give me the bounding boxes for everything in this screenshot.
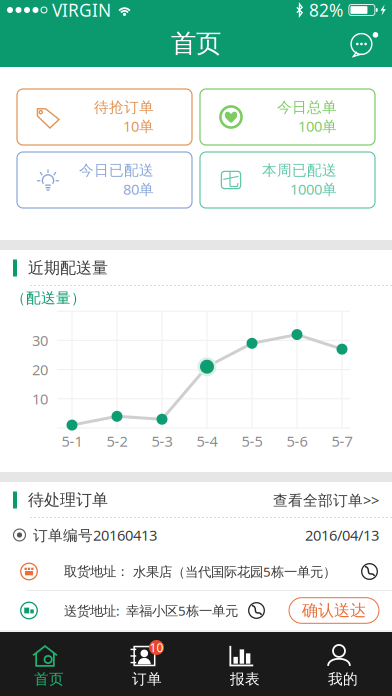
button[interactable]: 拨打取货电话 (361, 563, 378, 580)
staticText: 5-3 (151, 431, 172, 451)
staticText: （配送量） (11, 289, 86, 307)
staticText: 5-4 (196, 431, 217, 451)
staticText: VIRGIN (52, 0, 111, 21)
staticText: 5-7 (331, 431, 352, 451)
staticText: 近期配送量 (28, 258, 108, 278)
staticText: 30 (32, 331, 48, 350)
button[interactable]: 七 (200, 152, 375, 208)
button[interactable]: 查看全部订单>> (273, 490, 379, 510)
staticText: 我的 (328, 670, 358, 688)
button[interactable]: 首页 (0, 639, 98, 689)
staticText: 5-2 (106, 431, 127, 451)
staticText: 10 (32, 389, 48, 409)
staticText: 20 (32, 360, 48, 379)
staticText: 本周已配送 (262, 161, 337, 179)
staticText: 今日已配送 (79, 161, 154, 179)
button[interactable]: 消息 (340, 23, 386, 63)
staticText: 幸福小区5栋一单元 (126, 602, 238, 619)
staticText: 报表 (230, 670, 260, 688)
button[interactable]: 今日已配送 (17, 152, 192, 208)
staticText: 确认送达 (302, 601, 366, 620)
button[interactable]: 10 (98, 639, 196, 689)
staticText: 1000单 (290, 179, 337, 199)
staticText: 取货地址： (64, 563, 129, 580)
button[interactable]: 报表 (196, 639, 294, 689)
staticText: 订单 (132, 670, 162, 688)
staticText: 水果店（当代国际花园5栋一单元） (133, 563, 336, 580)
button[interactable]: 待抢订单 (17, 89, 192, 145)
button[interactable]: 拨打送货电话 (248, 602, 265, 619)
staticText: 5-5 (241, 431, 262, 451)
staticText: 待处理订单 (28, 490, 108, 510)
staticText: 送货地址: (64, 602, 120, 619)
staticText: 80单 (123, 179, 154, 199)
staticText: 10 (149, 639, 163, 655)
staticText: 订单编号20160413 (33, 525, 157, 545)
button[interactable]: 我的 (294, 639, 392, 689)
staticText: 5-6 (286, 431, 307, 451)
staticText: 100单 (298, 116, 337, 136)
staticText: 5-1 (61, 431, 82, 451)
staticText: 2016/04/13 (305, 525, 379, 545)
button[interactable]: 确认送达 (289, 598, 379, 623)
staticText: 82% (309, 0, 343, 21)
staticText: 10单 (123, 116, 154, 136)
staticText: 首页 (171, 28, 221, 59)
staticText: 七 (223, 170, 239, 190)
staticText: 今日总单 (277, 98, 337, 116)
button[interactable]: 今日总单 (200, 89, 375, 145)
staticText: 待抢订单 (94, 98, 154, 116)
staticText: 查看全部订单>> (273, 490, 379, 510)
staticText: 首页 (34, 670, 64, 688)
